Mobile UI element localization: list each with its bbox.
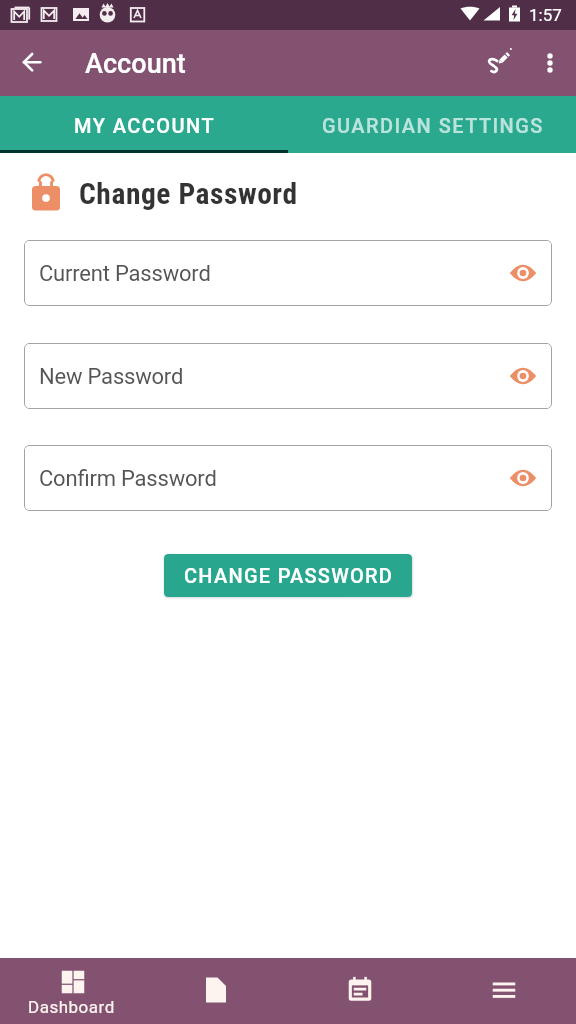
button[interactable]: Calendar [288,958,432,1024]
staticText: CHANGE PASSWORD [184,564,394,587]
staticText: New Password [39,364,184,390]
button[interactable]: Show password [500,455,546,501]
button[interactable]: GUARDIAN SETTINGS [288,96,576,153]
button[interactable]: New Password [24,343,552,409]
button[interactable]: Dashboard [0,958,144,1024]
button[interactable]: CHANGE PASSWORD [164,554,412,597]
staticText: Dashboard [28,997,115,1017]
staticText: MY ACCOUNT [74,114,216,137]
button[interactable]: Menu [432,958,576,1024]
button[interactable]: More options [530,43,570,83]
staticText: GUARDIAN SETTINGS [322,114,544,137]
button[interactable]: Show password [500,353,546,399]
staticText: Current Password [39,261,211,287]
button[interactable]: MY ACCOUNT [0,96,288,153]
staticText: Change Password [79,177,298,212]
button[interactable]: Signature [475,38,525,88]
button[interactable]: Documents [144,958,288,1024]
staticText: Confirm Password [39,466,217,492]
button[interactable]: Confirm Password [24,445,552,511]
staticText: Account [85,48,186,80]
button[interactable]: Current Password [24,240,552,306]
button[interactable]: Show password [500,250,546,296]
button[interactable]: Navigate up [8,38,58,88]
staticText: 1:57 [529,5,562,25]
